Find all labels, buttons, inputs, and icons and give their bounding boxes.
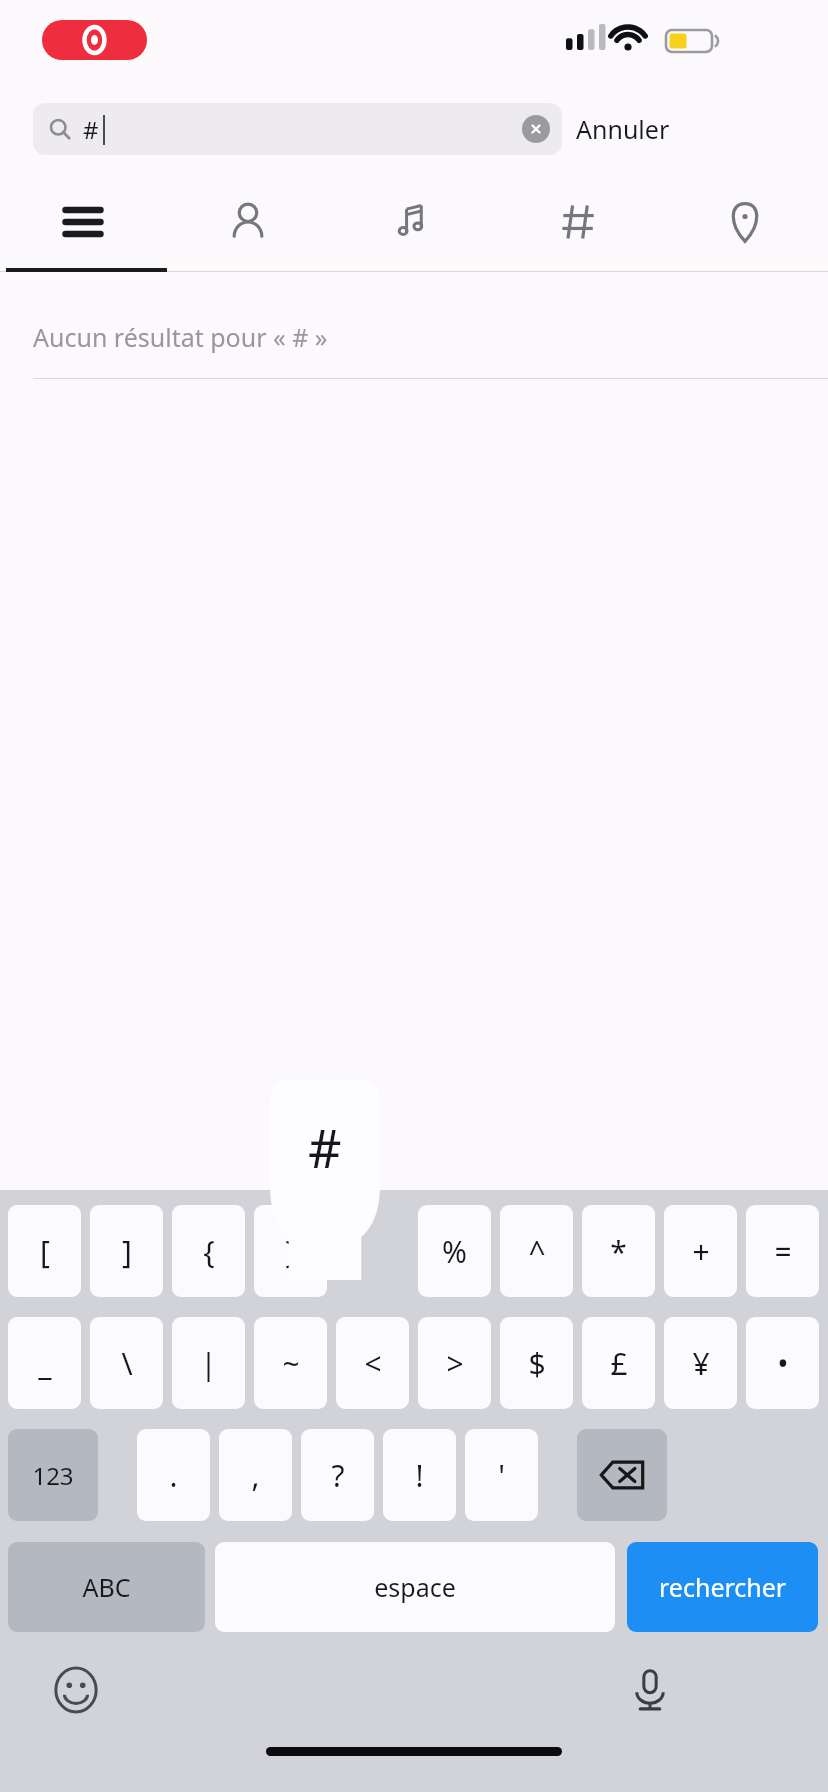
button[interactable]: }: [254, 1205, 327, 1297]
staticText: \: [121, 1343, 133, 1384]
staticText: }: [285, 1231, 297, 1272]
button[interactable]: ~: [254, 1317, 327, 1409]
button[interactable]: ]: [90, 1205, 163, 1297]
button[interactable]: Tags: [496, 172, 662, 272]
button[interactable]: Emoji keyboard: [48, 1662, 104, 1718]
staticText: *: [610, 1231, 627, 1272]
button[interactable]: %: [418, 1205, 491, 1297]
staticText: <: [364, 1343, 382, 1384]
button[interactable]: Songs: [330, 172, 496, 272]
staticText: |: [200, 1343, 217, 1384]
staticText: {: [203, 1231, 215, 1272]
staticText: .: [169, 1455, 178, 1496]
staticText: #: [308, 1112, 342, 1183]
staticText: $: [528, 1343, 546, 1384]
button[interactable]: All: [0, 172, 165, 272]
button[interactable]: !: [383, 1429, 456, 1521]
staticText: ¥: [692, 1343, 710, 1384]
staticText: espace: [374, 1570, 456, 1604]
button[interactable]: <: [336, 1317, 409, 1409]
button[interactable]: £: [582, 1317, 655, 1409]
staticText: #: [83, 113, 99, 146]
staticText: [: [40, 1231, 50, 1272]
button[interactable]: ^: [500, 1205, 573, 1297]
staticText: ': [498, 1455, 505, 1496]
button[interactable]: ABC: [8, 1542, 205, 1632]
button[interactable]: _: [8, 1317, 81, 1409]
button[interactable]: #: [33, 103, 562, 155]
button[interactable]: .: [137, 1429, 210, 1521]
button[interactable]: Clear text: [522, 115, 550, 143]
staticText: Aucun résultat pour « # »: [33, 320, 328, 354]
button[interactable]: rechercher: [627, 1542, 818, 1632]
button[interactable]: Annuler: [576, 112, 670, 146]
staticText: ABC: [82, 1570, 131, 1604]
button[interactable]: •: [746, 1317, 819, 1409]
button[interactable]: Backspace: [577, 1429, 667, 1521]
staticText: ,: [251, 1455, 260, 1496]
staticText: %: [442, 1231, 467, 1272]
staticText: ~: [282, 1343, 300, 1384]
button[interactable]: ,: [219, 1429, 292, 1521]
button[interactable]: Artists: [165, 172, 330, 272]
button[interactable]: [: [8, 1205, 81, 1297]
staticText: +: [692, 1231, 710, 1272]
staticText: Annuler: [576, 112, 670, 146]
staticText: 123: [32, 1459, 74, 1492]
staticText: ?: [331, 1455, 345, 1496]
button[interactable]: ?: [301, 1429, 374, 1521]
button[interactable]: ': [465, 1429, 538, 1521]
staticText: >: [446, 1343, 464, 1384]
staticText: =: [774, 1231, 792, 1272]
button[interactable]: |: [172, 1317, 245, 1409]
staticText: rechercher: [659, 1570, 787, 1604]
button[interactable]: 123: [8, 1429, 98, 1521]
button[interactable]: Recording indicator: [42, 20, 147, 60]
staticText: •: [777, 1343, 789, 1384]
button[interactable]: *: [582, 1205, 655, 1297]
button[interactable]: ¥: [664, 1317, 737, 1409]
button[interactable]: espace: [215, 1542, 615, 1632]
button[interactable]: +: [664, 1205, 737, 1297]
staticText: _: [38, 1343, 52, 1384]
button[interactable]: {: [172, 1205, 245, 1297]
button[interactable]: >: [418, 1317, 491, 1409]
staticText: !: [415, 1455, 424, 1496]
staticText: £: [610, 1343, 628, 1384]
staticText: ^: [528, 1231, 546, 1272]
button[interactable]: Places: [662, 172, 828, 272]
button[interactable]: $: [500, 1317, 573, 1409]
button[interactable]: Dictation: [620, 1660, 680, 1720]
button[interactable]: \: [90, 1317, 163, 1409]
button[interactable]: =: [746, 1205, 819, 1297]
staticText: ]: [122, 1231, 132, 1272]
